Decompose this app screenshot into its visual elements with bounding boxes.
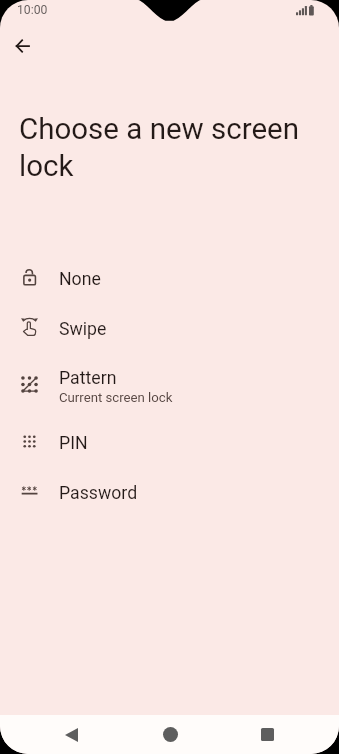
button[interactable]: None bbox=[0, 254, 339, 304]
button[interactable]: Navigate up bbox=[2, 26, 42, 66]
button[interactable]: Swipe bbox=[0, 304, 339, 354]
staticText: Current screen lock bbox=[59, 390, 173, 405]
staticText: Password bbox=[59, 483, 138, 504]
button[interactable]: Pattern bbox=[0, 354, 339, 418]
staticText: PIN bbox=[59, 433, 88, 454]
button[interactable]: Back bbox=[49, 715, 93, 754]
button[interactable]: Home bbox=[148, 715, 192, 754]
staticText: None bbox=[59, 269, 101, 290]
staticText: 10:00 bbox=[17, 3, 48, 17]
staticText: Swipe bbox=[59, 319, 107, 340]
staticText: Pattern bbox=[59, 368, 117, 389]
button[interactable]: PIN bbox=[0, 418, 339, 468]
button[interactable]: Recent apps bbox=[245, 715, 289, 754]
staticText: Choose a new screen lock bbox=[19, 112, 319, 183]
button[interactable]: Password bbox=[0, 468, 339, 518]
